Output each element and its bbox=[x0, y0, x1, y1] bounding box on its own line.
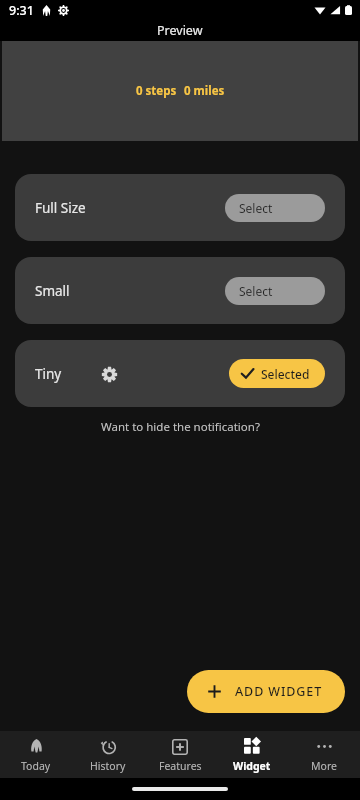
button[interactable]: Select bbox=[225, 277, 325, 305]
button[interactable]: Small bbox=[15, 257, 345, 324]
button[interactable]: Tiny bbox=[15, 340, 345, 407]
staticText: ADD WIDGET bbox=[235, 683, 323, 700]
button[interactable]: Features bbox=[144, 731, 216, 778]
staticText: Features bbox=[159, 759, 202, 773]
staticText: Small bbox=[35, 282, 70, 300]
staticText: History bbox=[90, 759, 126, 773]
staticText: Full Size bbox=[35, 199, 86, 217]
staticText: Today bbox=[21, 759, 51, 773]
staticText: Widget bbox=[233, 759, 271, 773]
staticText: Preview bbox=[157, 22, 203, 39]
staticText: 9:31 bbox=[9, 2, 34, 19]
staticText: More bbox=[311, 759, 337, 773]
button[interactable]: Today bbox=[0, 731, 72, 778]
button[interactable]: Full Size bbox=[15, 174, 345, 241]
staticText: 0 steps bbox=[136, 83, 177, 99]
staticText: Want to hide the notification? bbox=[101, 419, 260, 435]
staticText: Select bbox=[239, 283, 273, 299]
staticText: Tiny bbox=[35, 365, 62, 383]
button[interactable]: More bbox=[288, 731, 360, 778]
staticText: 0 miles bbox=[184, 83, 225, 99]
button[interactable]: Want to hide the notification? bbox=[0, 419, 360, 435]
button[interactable]: Selected bbox=[229, 359, 325, 388]
button[interactable]: Select bbox=[225, 194, 325, 222]
staticText: Select bbox=[239, 200, 273, 216]
button[interactable]: Widget bbox=[216, 731, 288, 778]
button[interactable]: History bbox=[72, 731, 144, 778]
staticText: Selected bbox=[261, 366, 310, 382]
button[interactable]: Settings bbox=[96, 361, 122, 387]
button[interactable]: ADD WIDGET bbox=[187, 670, 345, 713]
